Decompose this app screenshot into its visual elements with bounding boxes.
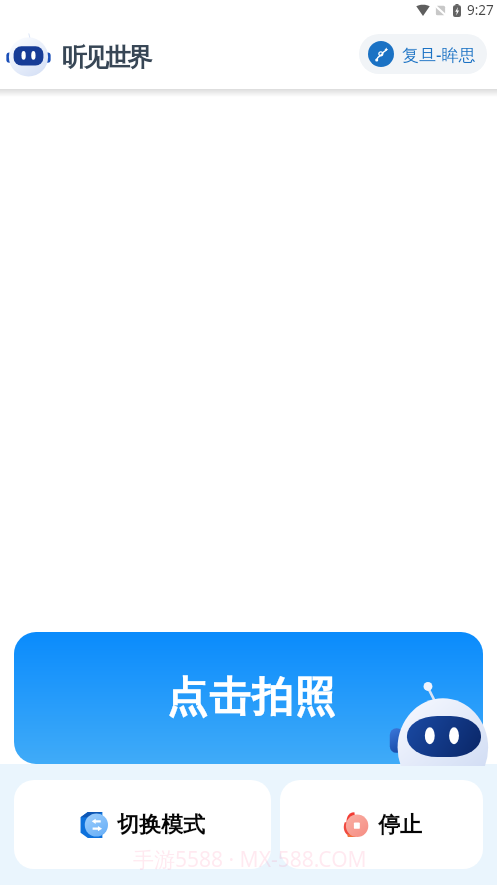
button[interactable]: 点击拍照 bbox=[14, 632, 483, 764]
staticText: 切换模式 bbox=[117, 811, 205, 839]
staticText: 点击拍照 bbox=[166, 672, 336, 724]
staticText: 手游5588 · MX-588.COM bbox=[133, 845, 367, 874]
button[interactable]: 停止 bbox=[280, 780, 483, 869]
button[interactable]: 听见世界 bbox=[6, 37, 150, 77]
staticText: 复旦-眸思 bbox=[402, 43, 476, 66]
button[interactable]: 复旦-眸思 bbox=[359, 34, 487, 74]
staticText: 听见世界 bbox=[62, 42, 150, 73]
staticText: 停止 bbox=[378, 811, 422, 839]
staticText: 9:27 bbox=[467, 1, 494, 19]
button[interactable]: 切换模式 bbox=[14, 780, 271, 869]
